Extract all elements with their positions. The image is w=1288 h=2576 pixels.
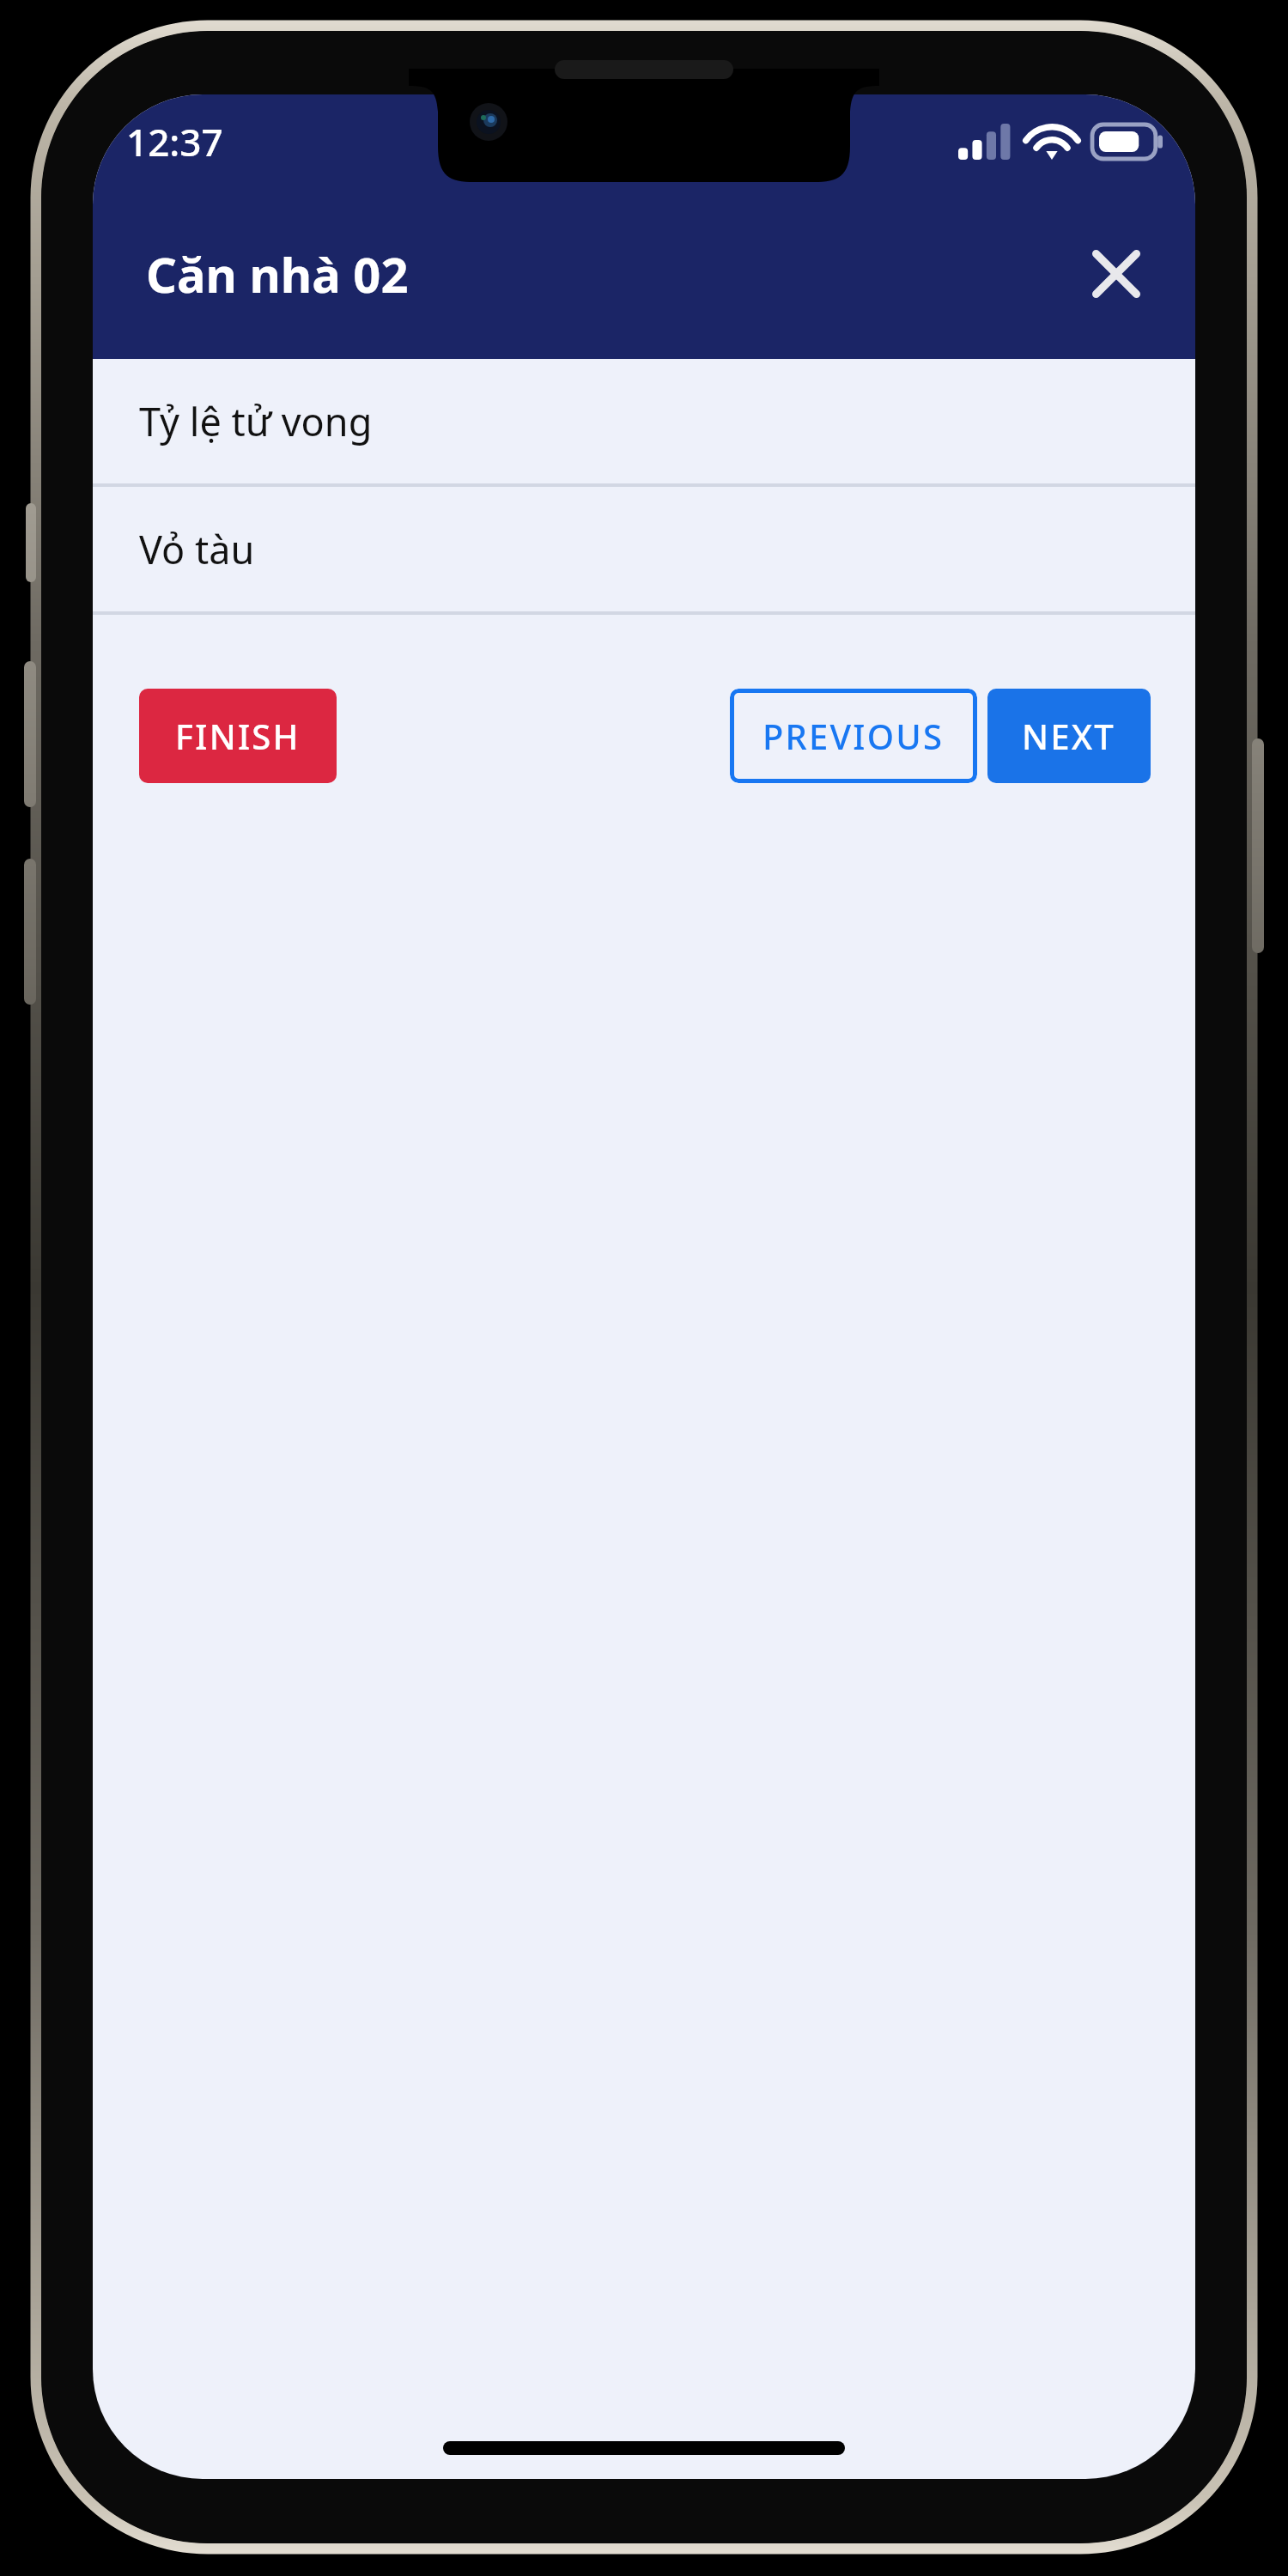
button[interactable]: Close bbox=[1075, 233, 1157, 315]
button[interactable]: Tỷ lệ tử vong bbox=[93, 359, 1195, 483]
button[interactable]: NEXT bbox=[987, 689, 1151, 783]
button[interactable]: PREVIOUS bbox=[730, 689, 977, 783]
staticText: NEXT bbox=[1022, 713, 1116, 759]
staticText: FINISH bbox=[175, 713, 301, 759]
button[interactable]: Vỏ tàu bbox=[93, 487, 1195, 611]
staticText: 12:37 bbox=[126, 116, 223, 167]
staticText: Căn nhà 02 bbox=[146, 241, 1075, 307]
button[interactable]: FINISH bbox=[139, 689, 337, 783]
staticText: Tỷ lệ tử vong bbox=[139, 395, 373, 447]
staticText: PREVIOUS bbox=[762, 713, 945, 759]
staticText: Vỏ tàu bbox=[139, 523, 255, 575]
